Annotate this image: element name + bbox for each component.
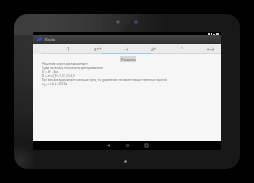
button[interactable]: 1 (54, 44, 83, 54)
staticText: ⊣ (124, 46, 129, 52)
staticText: ←∂ (207, 46, 214, 52)
staticText: ∂+ (151, 46, 157, 53)
staticText: xⁿ+ (94, 46, 102, 53)
staticText: ¹ (181, 46, 183, 53)
button[interactable]: Back (102, 141, 114, 150)
staticText: D = b² - 4ac (42, 70, 59, 74)
button[interactable]: Home (121, 141, 133, 150)
button[interactable]: ¹ (168, 44, 196, 54)
button[interactable]: Recent apps (140, 141, 152, 150)
button[interactable]: ←∂ (196, 44, 224, 54)
staticText: Решение через дискриминант (42, 62, 88, 66)
staticText: Судя по всему посчитаем дискриминант (42, 66, 104, 70)
staticText: D = x²+2,5²+1,5², D=3,5 (42, 74, 75, 78)
staticText: 1 (67, 46, 70, 53)
staticText: Kodu (45, 37, 56, 43)
staticText: Так как дискриминант меньше нуля, то ура… (42, 78, 167, 82)
staticText: x₁,₂ = (-b ± √D)/2a (42, 82, 68, 86)
button[interactable]: Решить (120, 56, 136, 62)
button[interactable]: Kodu (33, 35, 221, 44)
button[interactable]: ⊣ (112, 44, 140, 54)
button[interactable]: xⁿ+ (83, 44, 112, 54)
staticText: Решить (121, 57, 136, 62)
button[interactable]: ∂+ (140, 44, 168, 54)
